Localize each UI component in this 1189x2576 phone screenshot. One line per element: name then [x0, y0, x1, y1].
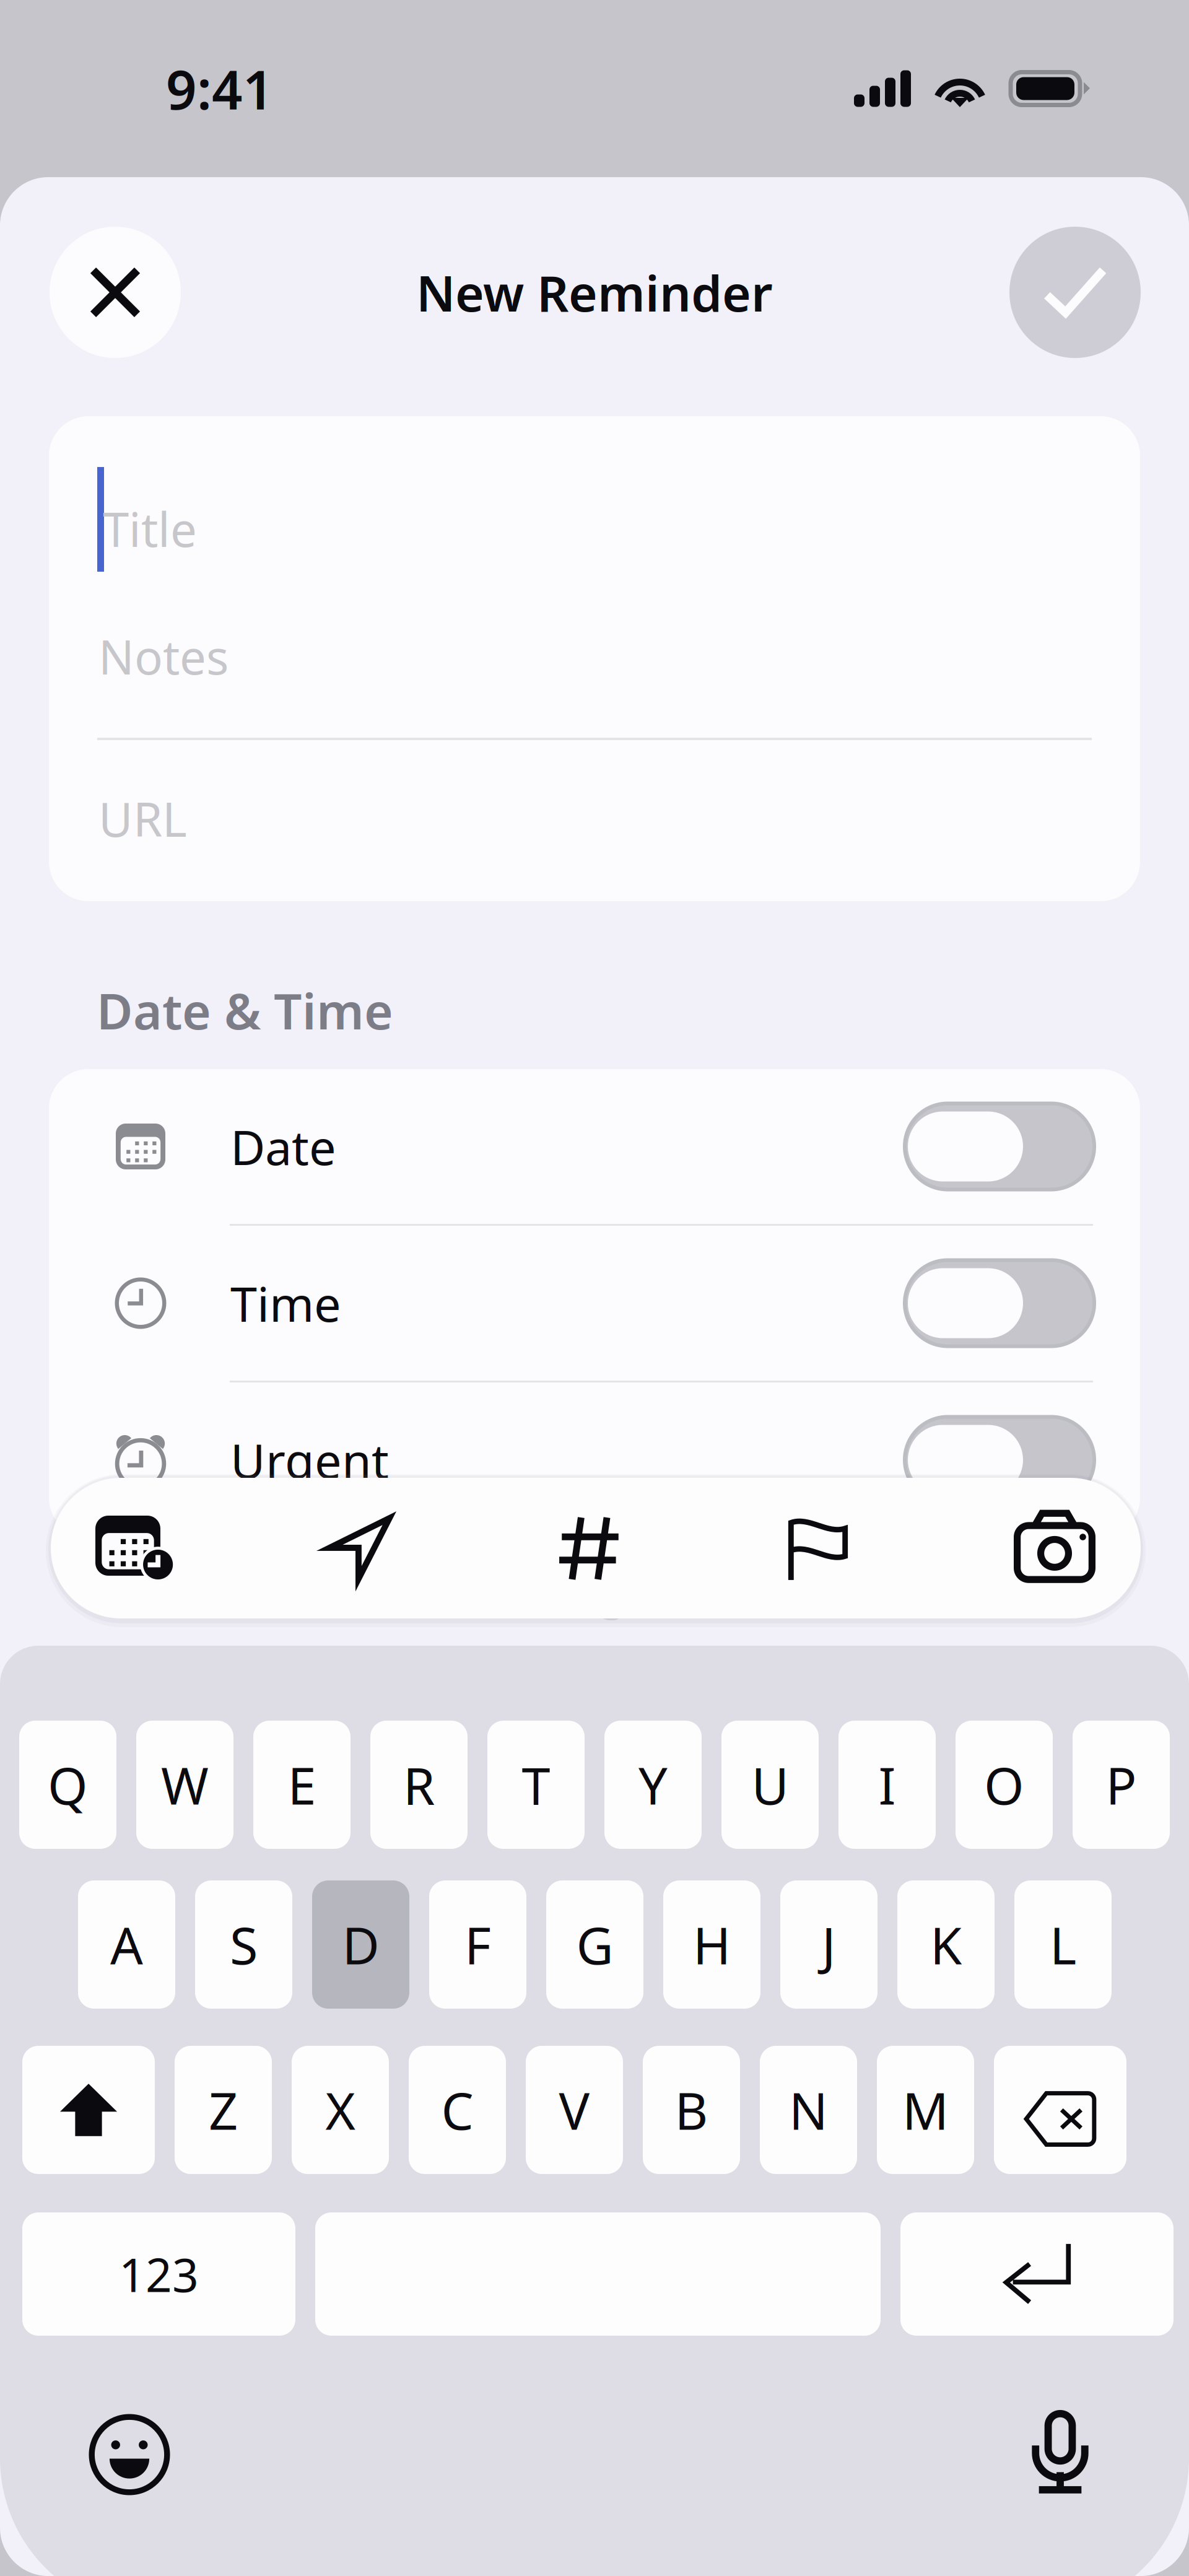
button[interactable]: Location — [307, 1496, 411, 1600]
staticText: E — [288, 1751, 316, 1819]
button[interactable]: L — [1014, 1880, 1112, 2009]
button[interactable]: Q — [19, 1721, 116, 1849]
button[interactable]: W — [136, 1721, 233, 1849]
button[interactable]: H — [663, 1880, 760, 2009]
staticText: Mark this reminder as urgent to set an a… — [101, 1565, 1007, 1622]
staticText: Date & Time — [97, 977, 393, 1043]
staticText: P — [1106, 1751, 1137, 1819]
staticText: V — [559, 2076, 590, 2144]
button[interactable]: Return — [900, 2212, 1174, 2336]
staticText: R — [403, 1751, 435, 1819]
staticText: Urgent — [230, 1428, 389, 1492]
button[interactable]: K — [897, 1880, 995, 2009]
button[interactable]: space — [315, 2212, 881, 2336]
staticText: Z — [209, 2076, 238, 2144]
button[interactable]: V — [526, 2046, 623, 2174]
button[interactable]: Dictation — [1014, 2405, 1107, 2498]
button[interactable]: A — [78, 1880, 175, 2009]
staticText: Notes — [98, 625, 229, 687]
button[interactable]: G — [546, 1880, 643, 2009]
button[interactable]: Camera — [1003, 1496, 1107, 1600]
button[interactable]: Y — [604, 1721, 702, 1849]
button[interactable]: X — [292, 2046, 389, 2174]
staticText: U — [751, 1751, 789, 1819]
button[interactable]: Tags — [538, 1496, 642, 1600]
button[interactable]: F — [429, 1880, 526, 2009]
button[interactable]: C — [409, 2046, 506, 2174]
button[interactable]: 123 — [22, 2212, 295, 2336]
staticText: O — [984, 1751, 1024, 1819]
button[interactable]: Urgent — [49, 1382, 1140, 1537]
staticText: Title — [103, 497, 197, 560]
staticText: M — [902, 2076, 949, 2144]
button[interactable]: P — [1073, 1721, 1170, 1849]
staticText: W — [161, 1751, 209, 1819]
staticText: URL — [98, 787, 187, 850]
staticText: Date — [230, 1115, 336, 1178]
button[interactable]: R — [370, 1721, 468, 1849]
staticText: G — [576, 1911, 613, 1979]
button[interactable]: O — [956, 1721, 1053, 1849]
button[interactable]: Flag — [766, 1496, 870, 1600]
button[interactable]: E — [253, 1721, 351, 1849]
staticText: H — [693, 1911, 731, 1979]
staticText: B — [675, 2076, 708, 2144]
button[interactable]: U — [721, 1721, 819, 1849]
staticText: D — [342, 1911, 379, 1979]
staticText: Time — [230, 1271, 341, 1335]
button[interactable]: Date and time — [83, 1496, 187, 1600]
button[interactable]: N — [760, 2046, 857, 2174]
button[interactable]: D — [312, 1880, 409, 2009]
staticText: C — [441, 2076, 473, 2144]
button[interactable]: B — [643, 2046, 740, 2174]
button[interactable]: Z — [175, 2046, 272, 2174]
button[interactable]: Close — [50, 227, 181, 358]
staticText: S — [230, 1911, 258, 1979]
button[interactable]: Date — [49, 1069, 1140, 1224]
staticText: F — [464, 1911, 491, 1979]
button[interactable]: I — [838, 1721, 936, 1849]
staticText: X — [325, 2076, 355, 2144]
staticText: Y — [638, 1751, 668, 1819]
button[interactable]: Shift — [22, 2046, 155, 2174]
staticText: New Reminder — [416, 259, 773, 325]
button[interactable]: J — [780, 1880, 878, 2009]
button[interactable]: S — [195, 1880, 292, 2009]
button[interactable]: Delete — [994, 2046, 1126, 2174]
staticText: L — [1050, 1911, 1076, 1979]
staticText: I — [878, 1751, 896, 1819]
button[interactable]: Add reminder — [1009, 227, 1141, 358]
button[interactable]: M — [877, 2046, 974, 2174]
staticText: Q — [48, 1751, 88, 1819]
button[interactable]: Emoji — [83, 2408, 176, 2501]
button[interactable]: T — [487, 1721, 585, 1849]
staticText: N — [789, 2076, 828, 2144]
staticText: T — [522, 1751, 550, 1819]
staticText: J — [822, 1911, 836, 1979]
staticText: K — [930, 1911, 962, 1979]
staticText: 9:41 — [166, 53, 274, 124]
staticText: 123 — [119, 2243, 199, 2305]
staticText: A — [110, 1911, 143, 1979]
button[interactable]: Time — [49, 1226, 1140, 1381]
